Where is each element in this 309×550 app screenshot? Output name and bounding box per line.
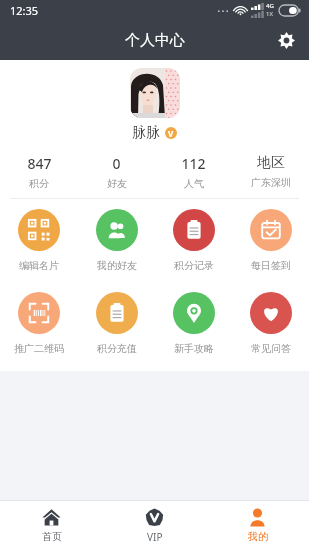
button[interactable]: VIP <box>103 501 206 550</box>
staticText: 12:35 <box>10 3 39 18</box>
staticText: 积分 <box>29 177 49 190</box>
button[interactable]: 积分记录 <box>155 209 232 272</box>
staticText: 847 <box>27 154 52 173</box>
button[interactable]: 0 <box>78 154 155 190</box>
staticText: 地区 <box>257 154 285 172</box>
staticText: V <box>168 128 174 139</box>
staticText: 我的 <box>248 530 268 543</box>
staticText: 广东深圳 <box>251 176 291 189</box>
button[interactable]: 积分充值 <box>78 292 155 355</box>
staticText: 常见问答 <box>251 342 291 355</box>
staticText: 脉脉 <box>132 124 160 142</box>
staticText: 0 <box>112 154 121 173</box>
button[interactable]: 847 <box>0 154 78 190</box>
staticText: 112 <box>181 154 206 173</box>
button[interactable]: 每日签到 <box>232 209 309 272</box>
button[interactable]: 编辑名片 <box>0 209 78 272</box>
button[interactable]: 推广二维码 <box>0 292 78 355</box>
staticText: 推广二维码 <box>14 342 64 355</box>
staticText: 好友 <box>107 177 127 190</box>
staticText: 个人中心 <box>125 31 185 50</box>
staticText: 积分记录 <box>174 259 214 272</box>
button[interactable]: 常见问答 <box>232 292 309 355</box>
staticText: 人气 <box>184 177 204 190</box>
staticText: 1X <box>266 10 273 18</box>
staticText: 编辑名片 <box>19 259 59 272</box>
staticText: 4G <box>266 2 274 10</box>
staticText: 我的好友 <box>97 259 137 272</box>
staticText: 每日签到 <box>251 259 291 272</box>
staticText: 新手攻略 <box>174 342 214 355</box>
staticText: VIP <box>147 530 163 544</box>
button[interactable]: 112 <box>155 154 232 190</box>
staticText: 首页 <box>42 530 62 543</box>
button[interactable]: Avatar <box>130 68 180 118</box>
button[interactable]: 我的好友 <box>78 209 155 272</box>
button[interactable]: 新手攻略 <box>155 292 232 355</box>
button[interactable]: 地区 <box>232 154 309 189</box>
button[interactable]: 我的 <box>206 501 309 550</box>
staticText: 积分充值 <box>97 342 137 355</box>
button[interactable]: 首页 <box>0 501 103 550</box>
button[interactable]: Settings <box>273 27 299 53</box>
